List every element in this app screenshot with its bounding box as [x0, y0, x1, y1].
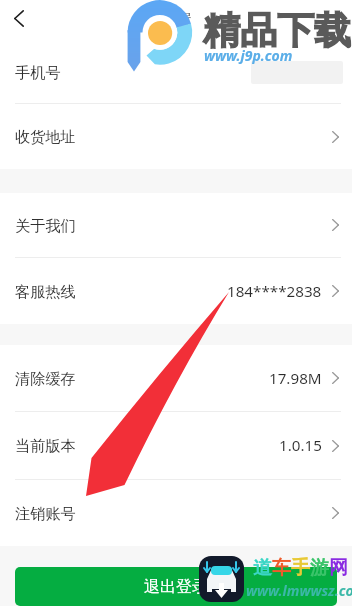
staticText: 当前版本 [15, 436, 76, 455]
button[interactable]: Back [0, 0, 38, 36]
staticText: 手 [291, 556, 310, 580]
button[interactable]: 客服热线 [0, 258, 352, 324]
staticText: 清除缓存 [15, 369, 76, 388]
staticText: 客服热线 [15, 282, 76, 301]
staticText: 车 [272, 556, 291, 580]
staticText: 关于我们 [15, 216, 76, 235]
staticText: 退出登录 [144, 577, 208, 597]
staticText: 手机号 [15, 63, 61, 82]
staticText: 1.0.15 [279, 435, 322, 456]
staticText: www.lmwwsz.com [246, 581, 352, 600]
staticText: 精品下载 [203, 7, 351, 54]
staticText: 道 [253, 556, 272, 580]
staticText: 网 [329, 556, 348, 580]
button[interactable]: 清除缓存 [0, 345, 352, 412]
staticText: 收货地址 [15, 127, 76, 146]
button[interactable]: 当前版本 [0, 412, 352, 480]
button[interactable]: 关于我们 [0, 193, 352, 258]
staticText: 设置 [160, 11, 192, 31]
staticText: www.j9p.com [204, 46, 293, 65]
button[interactable]: 注销账号 [0, 480, 352, 546]
staticText: 游 [310, 556, 329, 580]
staticText: 17.98M [269, 368, 322, 389]
button[interactable]: 退出登录 [15, 567, 337, 606]
staticText: 注销账号 [15, 504, 76, 523]
button[interactable]: 收货地址 [0, 104, 352, 169]
staticText: 184****2838 [227, 281, 322, 302]
button[interactable]: 手机号 [0, 42, 352, 104]
